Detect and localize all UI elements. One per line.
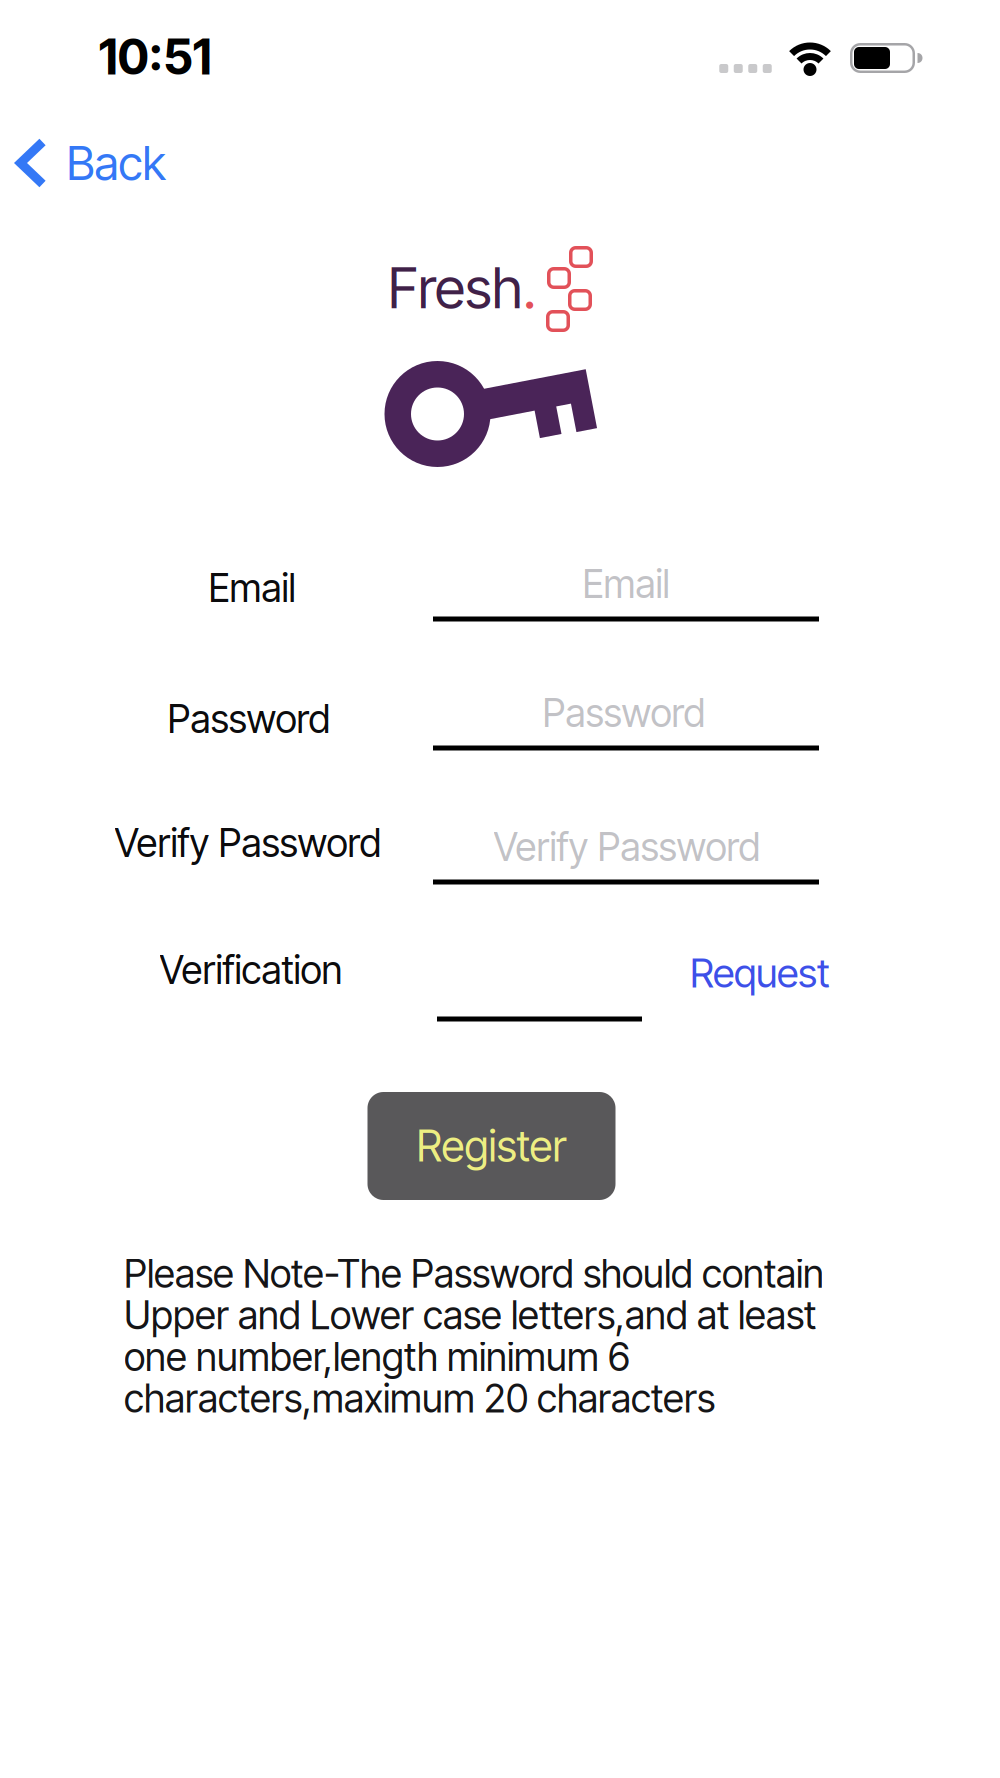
button[interactable]: Register — [367, 1092, 615, 1200]
staticText: Email — [582, 561, 669, 607]
staticText: Verification — [159, 947, 342, 993]
staticText: Email — [208, 565, 295, 611]
staticText: Please Note-The Password should contain … — [124, 1251, 824, 1421]
staticText: Password — [542, 690, 705, 736]
button[interactable]: Email — [433, 557, 819, 627]
staticText: Request — [690, 949, 830, 997]
staticText: Fresh — [388, 255, 523, 321]
staticText: Password — [167, 696, 330, 742]
staticText: Back — [66, 135, 165, 191]
staticText: Verify Password — [493, 824, 760, 870]
button[interactable]: Verification code — [437, 957, 642, 1023]
staticText: . — [523, 255, 536, 321]
button[interactable]: Back — [16, 135, 165, 191]
staticText: Verify Password — [114, 820, 381, 866]
button[interactable]: Request — [690, 949, 830, 997]
staticText: Register — [416, 1121, 566, 1171]
button[interactable]: Password — [433, 686, 819, 756]
staticText: 10:51 — [98, 29, 211, 85]
button[interactable]: Verify Password — [433, 820, 819, 890]
